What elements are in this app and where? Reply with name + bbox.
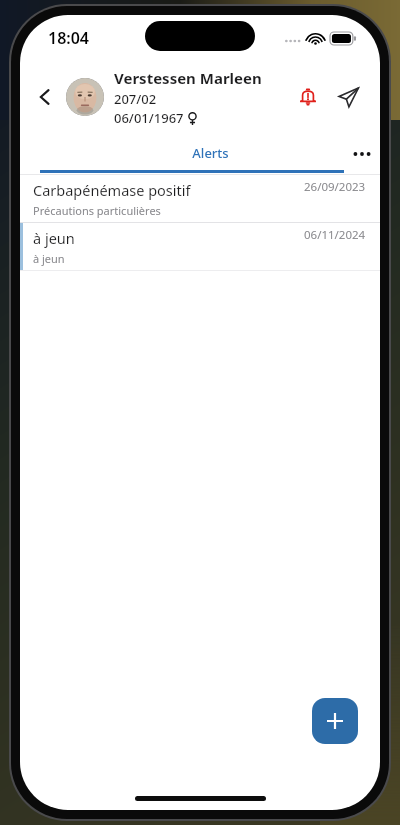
staticText: Alerts: [192, 144, 229, 162]
button[interactable]: Carbapénémase positif: [20, 175, 380, 222]
staticText: 06/11/2024: [304, 227, 366, 243]
staticText: 06/01/1967: [114, 109, 184, 127]
button[interactable]: à jeun: [20, 223, 380, 270]
button[interactable]: Back: [26, 78, 64, 116]
staticText: Carbapénémase positif: [33, 180, 191, 200]
button[interactable]: Alerts: [40, 133, 380, 175]
staticText: 207/02: [114, 90, 157, 108]
button[interactable]: Add alert: [312, 698, 358, 744]
button[interactable]: More tabs: [344, 133, 380, 175]
staticText: à jeun: [33, 251, 65, 266]
staticText: 18:04: [48, 27, 90, 49]
staticText: Verstessen Marleen: [114, 68, 262, 88]
staticText: à jeun: [33, 228, 75, 248]
staticText: 26/09/2023: [304, 179, 366, 195]
button[interactable]: Alerts: [290, 79, 326, 115]
staticText: Précautions particulières: [33, 203, 161, 218]
button[interactable]: Patient photo: [66, 78, 104, 116]
button[interactable]: Send: [330, 79, 366, 115]
